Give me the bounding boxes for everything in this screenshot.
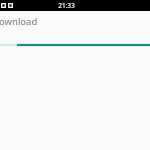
staticText: ownload (0, 15, 38, 28)
other: Download progress (0, 43, 150, 47)
staticText: 21:33 (58, 1, 75, 10)
button[interactable]: ownload (0, 11, 150, 31)
